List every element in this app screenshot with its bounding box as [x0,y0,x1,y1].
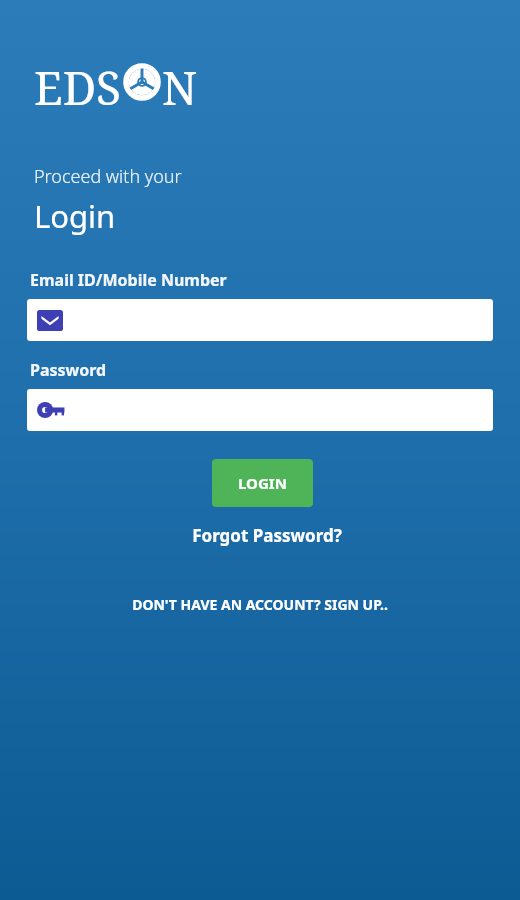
staticText: Forgot Password? [192,524,342,547]
staticText: DON'T HAVE AN ACCOUNT? SIGN UP.. [132,595,388,614]
staticText: LOGIN [238,473,287,493]
staticText: Email ID/Mobile Number [30,269,227,291]
button[interactable]: Forgot Password? [192,524,342,547]
staticText: Password [30,359,107,381]
button[interactable]: DON'T HAVE AN ACCOUNT? SIGN UP.. [124,591,396,618]
staticText: Login [34,195,116,237]
other: EDSON logo [34,56,198,108]
button[interactable] [27,299,493,341]
staticText: EDS [34,56,122,108]
staticText: Proceed with your [34,164,182,189]
button[interactable]: LOGIN [212,459,313,507]
button[interactable] [27,389,493,431]
staticText: N [162,56,198,108]
